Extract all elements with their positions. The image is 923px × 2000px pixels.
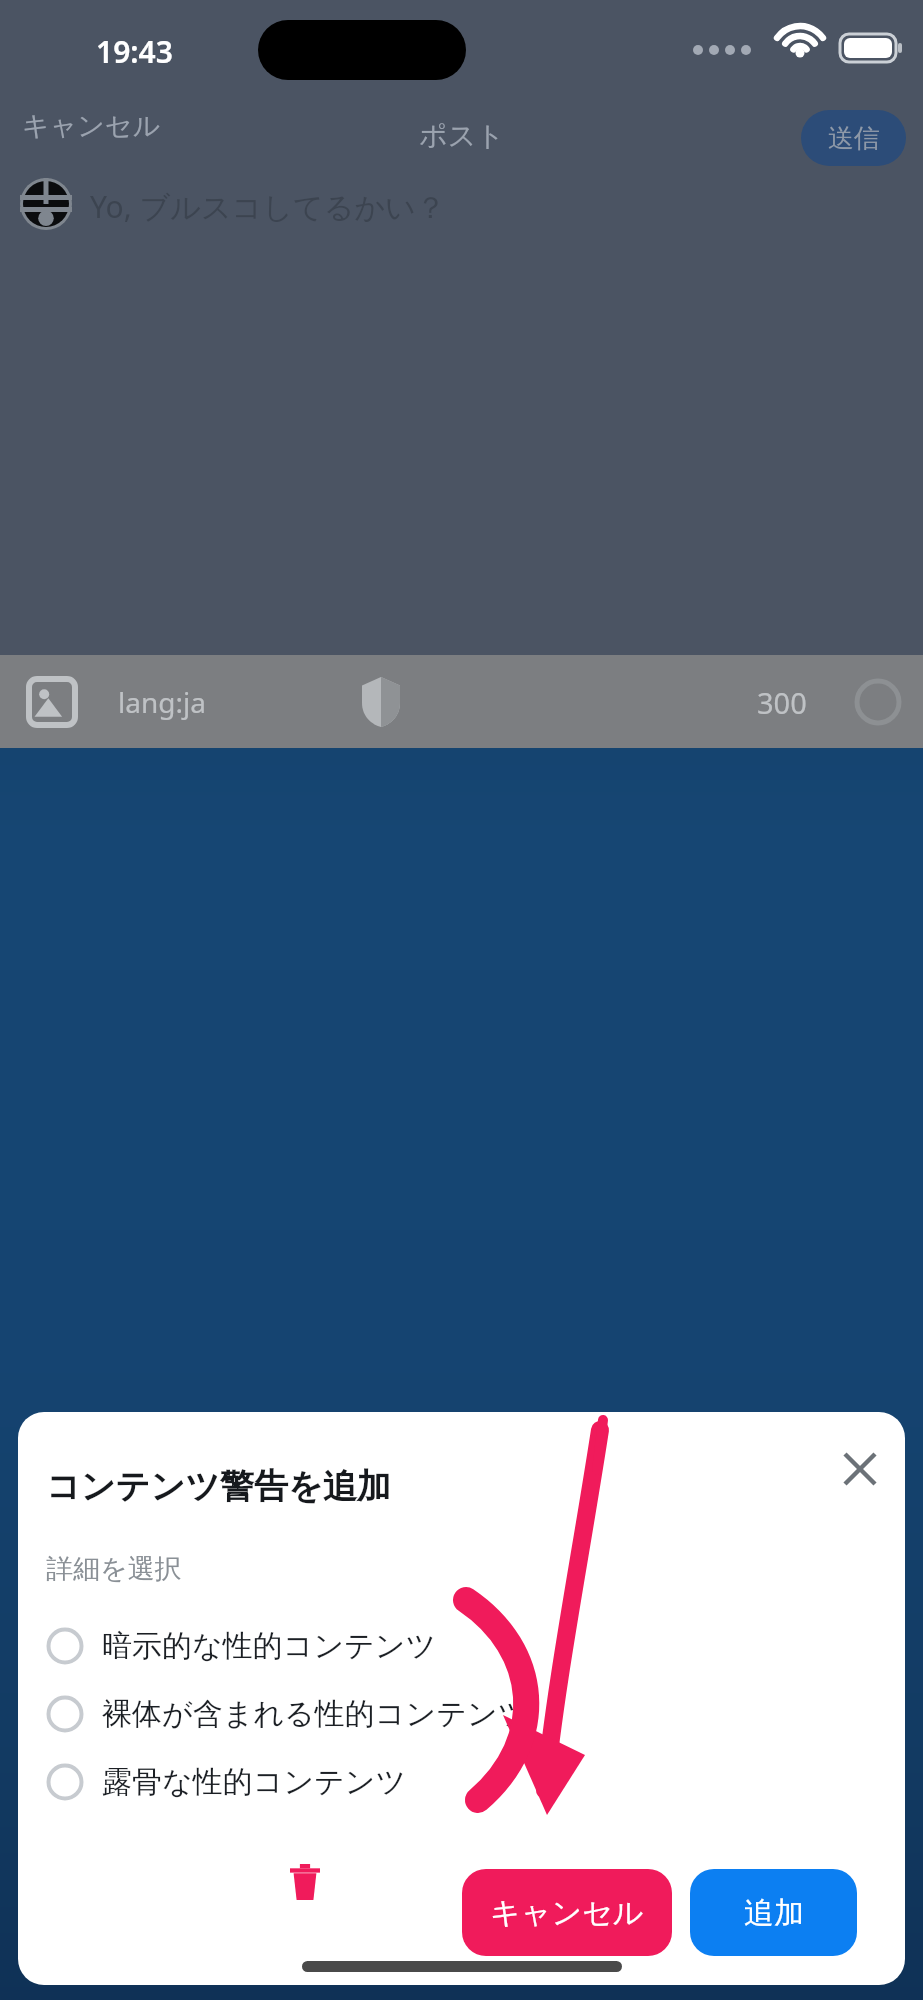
- staticText: 送信: [828, 122, 880, 155]
- button[interactable]: 暗示的な性的コンテンツ: [46, 1612, 905, 1680]
- button[interactable]: 追加: [690, 1869, 857, 1956]
- staticText: コンテンツ警告を追加: [46, 1465, 391, 1508]
- button[interactable]: 送信: [801, 110, 906, 166]
- button[interactable]: lang:ja: [118, 683, 206, 721]
- button[interactable]: Add image: [23, 673, 81, 731]
- staticText: 追加: [744, 1894, 804, 1932]
- button[interactable]: キャンセル: [22, 109, 161, 143]
- button[interactable]: Close: [829, 1438, 891, 1500]
- button[interactable]: キャンセル: [462, 1869, 672, 1956]
- staticText: ポスト: [419, 118, 505, 153]
- staticText: キャンセル: [22, 109, 161, 143]
- staticText: 露骨な性的コンテンツ: [102, 1763, 407, 1801]
- staticText: 暗示的な性的コンテンツ: [102, 1627, 437, 1665]
- button[interactable]: Content warning: [352, 673, 410, 731]
- staticText: 裸体が含まれる性的コンテンツ: [102, 1695, 529, 1733]
- button[interactable]: 露骨な性的コンテンツ: [46, 1748, 905, 1816]
- staticText: キャンセル: [490, 1894, 644, 1932]
- staticText: 300: [757, 683, 807, 722]
- staticText: 19:43: [96, 31, 173, 72]
- staticText: 詳細を選択: [46, 1552, 182, 1586]
- button[interactable]: 裸体が含まれる性的コンテンツ: [46, 1680, 905, 1748]
- button[interactable]: Delete: [273, 1850, 337, 1914]
- staticText: Yo, ブルスコしてるかい？: [90, 186, 446, 227]
